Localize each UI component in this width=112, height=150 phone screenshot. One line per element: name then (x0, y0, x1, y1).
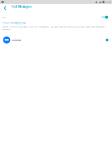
staticText: On (2, 16, 5, 19)
button[interactable]: Messenger (0, 36, 112, 44)
staticText: 12:30 (106, 1, 111, 3)
staticText: Select Messaging App (2, 21, 25, 24)
button[interactable]: On (0, 15, 112, 20)
staticText: Text Messages (11, 5, 31, 8)
staticText: Select a service and app to use for mess… (2, 25, 105, 31)
button[interactable]: Back (0, 4, 11, 14)
staticText: Messenger (11, 38, 21, 41)
